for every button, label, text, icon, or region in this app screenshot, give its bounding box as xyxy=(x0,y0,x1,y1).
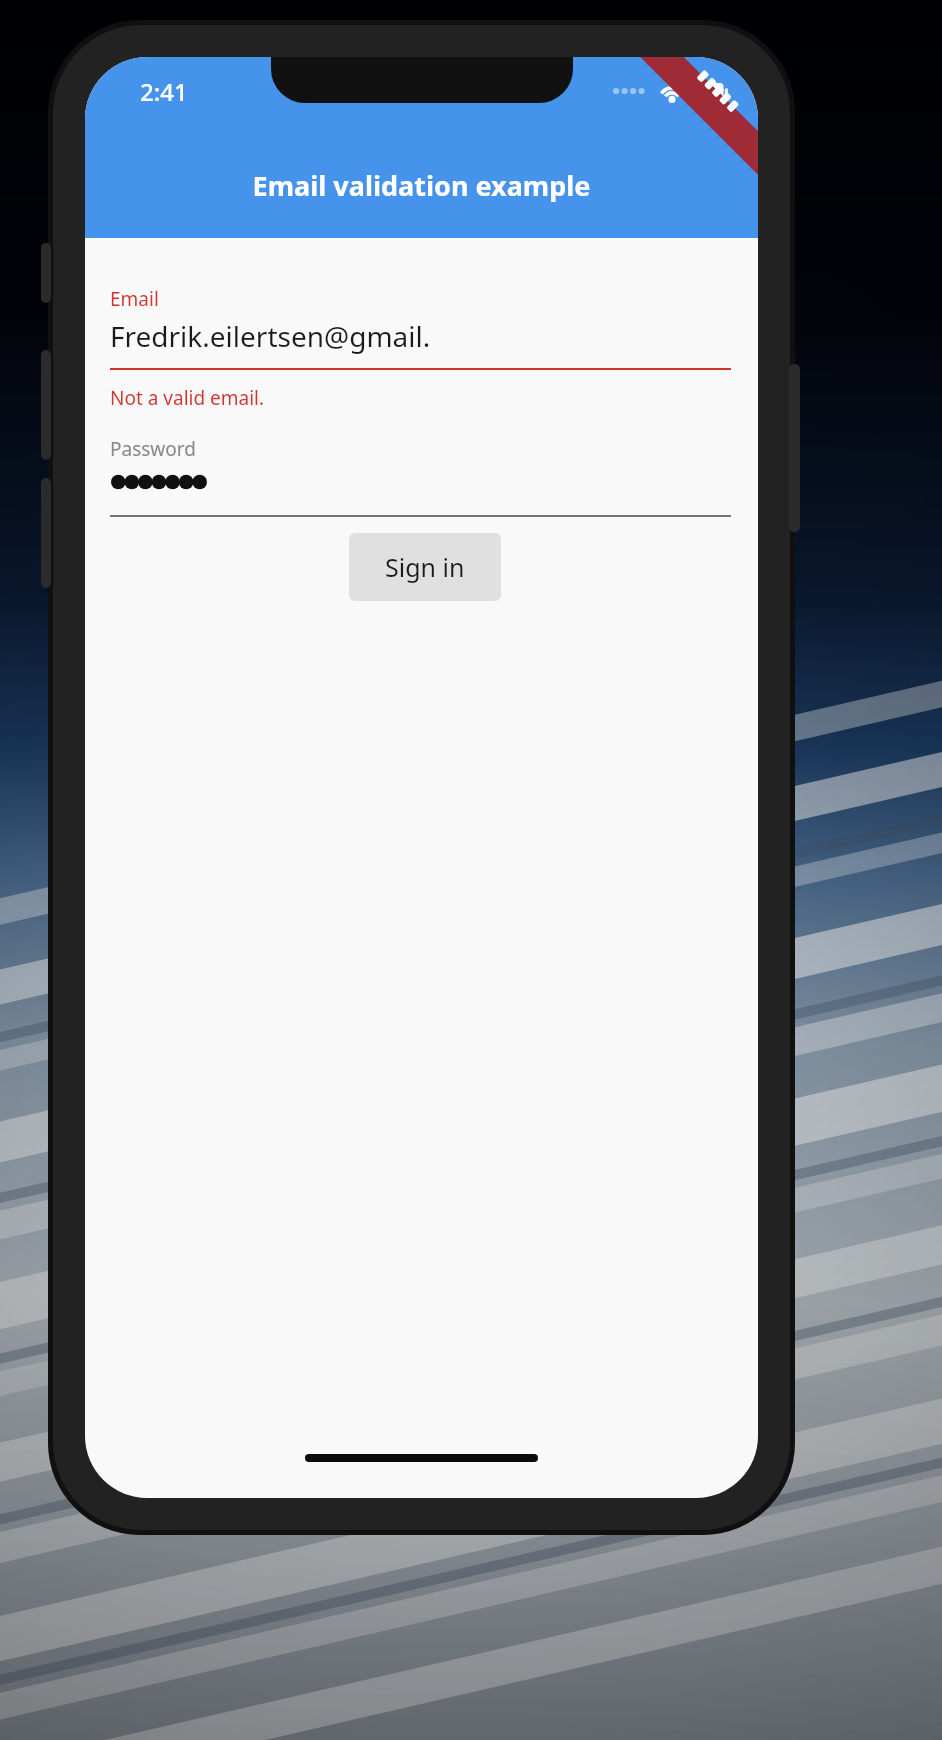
staticText: Fredrik.eilertsen@gmail. xyxy=(110,317,431,355)
button[interactable]: Sign in xyxy=(349,533,501,601)
staticText: Email xyxy=(110,286,159,312)
button[interactable]: Password xyxy=(110,436,731,517)
button[interactable]: Email xyxy=(110,286,731,370)
staticText: Password xyxy=(110,436,196,462)
staticText: 2:41 xyxy=(140,75,188,108)
staticText: Sign in xyxy=(385,550,465,584)
staticText: Not a valid email. xyxy=(110,385,265,411)
staticText: Email validation example xyxy=(85,167,758,204)
